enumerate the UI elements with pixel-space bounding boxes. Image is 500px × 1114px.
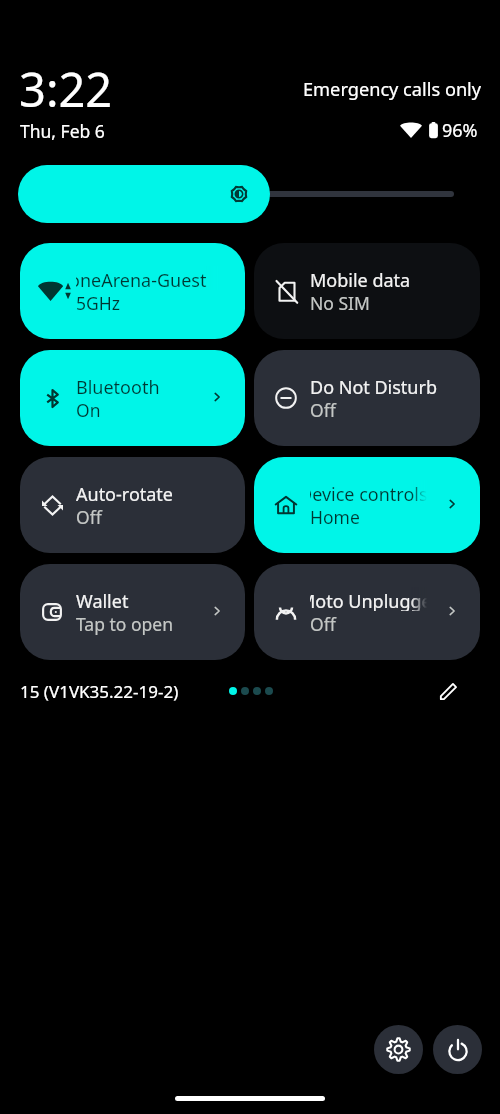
button[interactable]: Edit tiles	[432, 674, 466, 708]
button[interactable]: Auto-rotate	[20, 457, 245, 553]
staticText: 3:22	[19, 57, 113, 121]
button[interactable]: Settings	[374, 1025, 423, 1074]
staticText: Wallet	[76, 589, 129, 611]
button[interactable]: Wallet	[20, 564, 245, 660]
staticText: Home	[310, 505, 360, 529]
staticText: 15 (V1VK35.22-19-2)	[20, 680, 179, 703]
staticText: Thu, Feb 6	[20, 119, 105, 143]
button[interactable]: Moto Unplugged	[254, 564, 480, 660]
button[interactable]: Bluetooth	[20, 350, 245, 446]
staticText: Bluetooth	[76, 375, 160, 397]
button[interactable]: Device controls	[254, 457, 480, 553]
staticText: 96%	[442, 118, 478, 143]
staticText: Do Not Disturb	[310, 375, 437, 397]
button[interactable]: Do Not Disturb	[254, 350, 480, 446]
staticText: Moto Unplugged	[310, 589, 427, 611]
staticText: Mobile data	[310, 268, 411, 290]
staticText: Off	[310, 612, 336, 636]
staticText: Tap to open	[76, 612, 173, 636]
staticText: Off	[76, 505, 102, 529]
button[interactable]: Mobile data	[254, 243, 480, 339]
staticText: Device controls	[310, 482, 427, 504]
button[interactable]: Power	[433, 1025, 482, 1074]
staticText: PhoneArena-Guest	[76, 268, 207, 290]
staticText: Emergency calls only	[303, 77, 482, 102]
staticText: 5GHz	[76, 291, 120, 315]
staticText: Auto-rotate	[76, 482, 174, 504]
staticText: On	[76, 398, 101, 422]
button[interactable]: Brightness	[18, 165, 270, 223]
button[interactable]: PhoneArena-Guest	[20, 243, 245, 339]
staticText: No SIM	[310, 291, 370, 315]
staticText: Off	[310, 398, 336, 422]
